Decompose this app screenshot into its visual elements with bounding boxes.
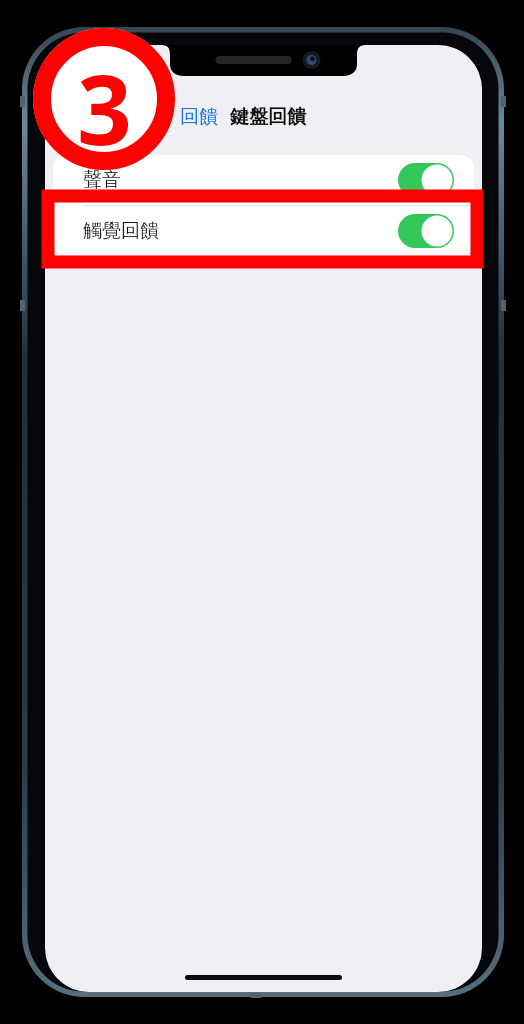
button[interactable]: 聲音 <box>53 155 474 205</box>
staticText: 回饋 <box>180 105 218 129</box>
staticText: 聲音 <box>83 168 121 192</box>
button[interactable]: Toggle on <box>398 214 454 248</box>
button[interactable]: 鍵盤回饋 <box>230 105 306 129</box>
staticText: 3 <box>60 42 149 157</box>
button[interactable]: Toggle on <box>398 163 454 197</box>
button[interactable]: 觸覺回饋 <box>53 206 474 255</box>
staticText: 觸覺回饋 <box>83 219 159 243</box>
